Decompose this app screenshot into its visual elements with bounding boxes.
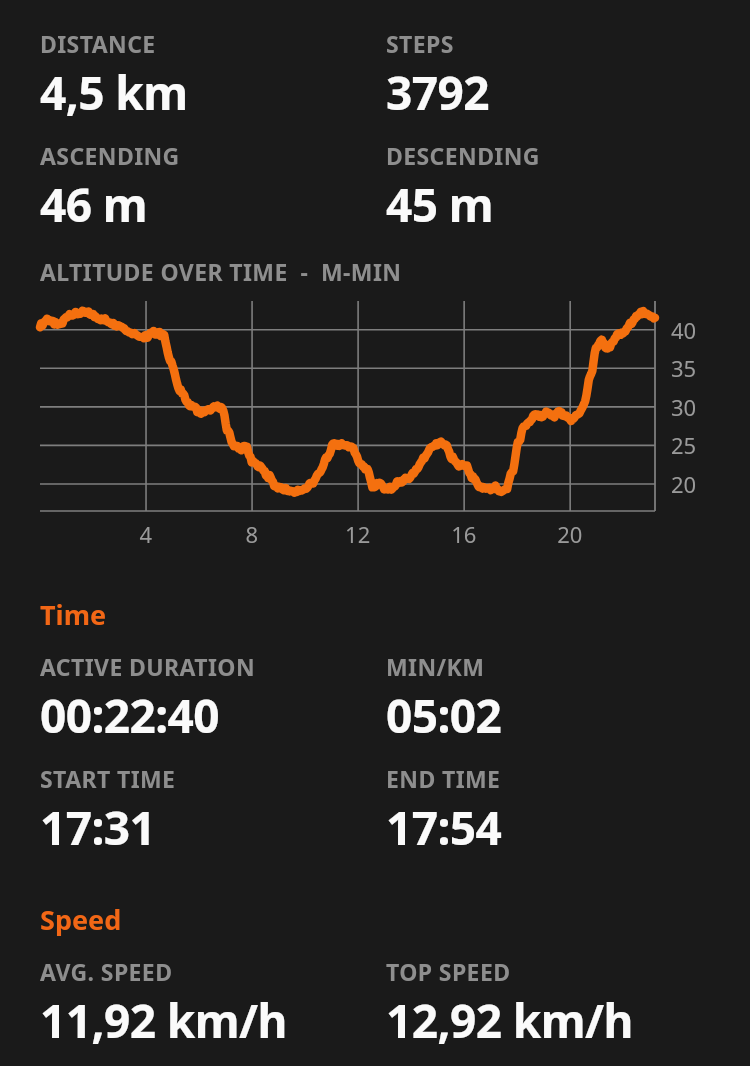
button[interactable]: ACTIVE DURATION xyxy=(40,651,386,747)
button[interactable]: DISTANCE xyxy=(40,28,386,124)
staticText: Speed xyxy=(40,901,122,938)
staticText: 11,92 km/h xyxy=(40,989,287,1052)
staticText: 4,5 km xyxy=(40,61,188,124)
staticText: STEPS xyxy=(386,28,454,59)
button[interactable]: AVG. SPEED xyxy=(40,956,386,1052)
button[interactable]: START TIME xyxy=(40,763,386,859)
staticText: 00:22:40 xyxy=(40,684,219,747)
button[interactable]: MIN/KM xyxy=(386,651,502,747)
staticText: 05:02 xyxy=(386,684,502,747)
staticText: DISTANCE xyxy=(40,28,156,59)
button[interactable]: DESCENDING xyxy=(386,140,540,236)
button[interactable]: STEPS xyxy=(386,28,489,124)
staticText: ASCENDING xyxy=(40,140,180,171)
button[interactable]: Time xyxy=(0,596,750,633)
staticText: 17:31 xyxy=(40,796,156,859)
staticText: AVG. SPEED xyxy=(40,956,173,987)
staticText: ACTIVE DURATION xyxy=(40,651,255,682)
button[interactable]: ASCENDING xyxy=(40,140,386,236)
button[interactable]: Speed xyxy=(0,901,750,938)
button[interactable]: END TIME xyxy=(386,763,502,859)
staticText: END TIME xyxy=(386,763,501,794)
staticText: DESCENDING xyxy=(386,140,540,171)
staticText: 17:54 xyxy=(386,796,502,859)
staticText: ALTITUDE OVER TIME - M-MIN xyxy=(40,256,402,287)
staticText: START TIME xyxy=(40,763,176,794)
staticText: TOP SPEED xyxy=(386,956,511,987)
staticText: 12,92 km/h xyxy=(386,989,633,1052)
staticText: MIN/KM xyxy=(386,651,485,682)
button[interactable]: TOP SPEED xyxy=(386,956,633,1052)
staticText: Time xyxy=(40,596,107,633)
staticText: 45 m xyxy=(386,173,494,236)
staticText: 46 m xyxy=(40,173,148,236)
staticText: 3792 xyxy=(386,61,489,124)
